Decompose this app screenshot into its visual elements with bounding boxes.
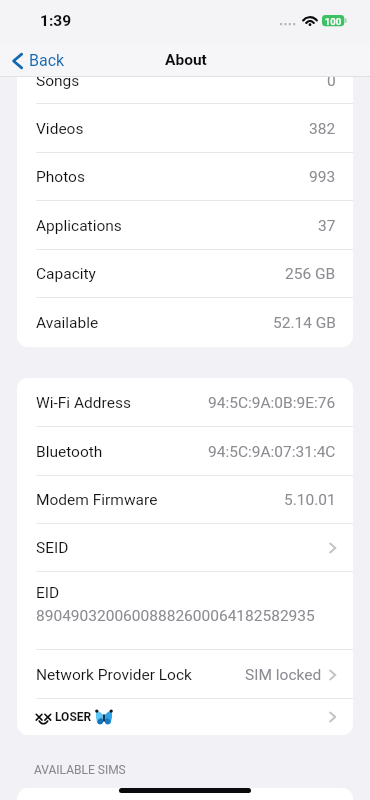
button[interactable]: EID <box>17 572 353 650</box>
button[interactable]: Bluetooth <box>17 427 353 476</box>
staticText: 37 <box>318 217 336 235</box>
staticText: 0 <box>327 76 336 90</box>
staticText: 1:39 <box>40 12 72 30</box>
button[interactable]: LOSER <box>17 699 353 735</box>
staticText: Videos <box>36 120 84 138</box>
staticText: Back <box>29 51 65 70</box>
staticText: 100 <box>322 16 344 27</box>
staticText: Songs <box>36 76 80 90</box>
button[interactable]: Applications <box>17 201 353 250</box>
staticText: AVAILABLE SIMS <box>34 763 126 777</box>
staticText: EID <box>36 584 60 602</box>
staticText: SEID <box>36 539 69 557</box>
button[interactable]: Network Provider Lock <box>17 650 353 699</box>
staticText: 94:5C:9A:0B:9E:76 <box>208 394 336 412</box>
staticText: 89049032006008882600064182582935 <box>36 607 315 625</box>
staticText: 52.14 GB <box>273 314 336 332</box>
staticText: Modem Firmware <box>36 491 158 509</box>
button[interactable]: Wi-Fi Address <box>17 378 353 427</box>
staticText: SIM locked <box>245 666 322 684</box>
button[interactable]: Available <box>17 298 353 347</box>
button[interactable]: SEID <box>17 524 353 572</box>
button[interactable]: Songs <box>17 76 353 104</box>
button[interactable]: Capacity <box>17 250 353 298</box>
staticText: 5.10.01 <box>284 491 336 509</box>
staticText: Wi-Fi Address <box>36 394 131 412</box>
button[interactable]: Photos <box>17 153 353 201</box>
staticText: Capacity <box>36 265 96 283</box>
staticText: About <box>165 51 207 69</box>
button[interactable]: Back <box>12 51 65 70</box>
staticText: 256 GB <box>285 265 336 283</box>
button[interactable]: Modem Firmware <box>17 476 353 524</box>
staticText: 993 <box>309 168 336 186</box>
staticText: Bluetooth <box>36 443 103 461</box>
staticText: Applications <box>36 217 122 235</box>
staticText: Photos <box>36 168 85 186</box>
staticText: Network Provider Lock <box>36 666 192 684</box>
staticText: LOSER <box>55 710 92 724</box>
staticText: 382 <box>309 120 336 138</box>
staticText: Available <box>36 314 99 332</box>
staticText: 94:5C:9A:07:31:4C <box>208 443 336 461</box>
button[interactable]: Videos <box>17 104 353 153</box>
